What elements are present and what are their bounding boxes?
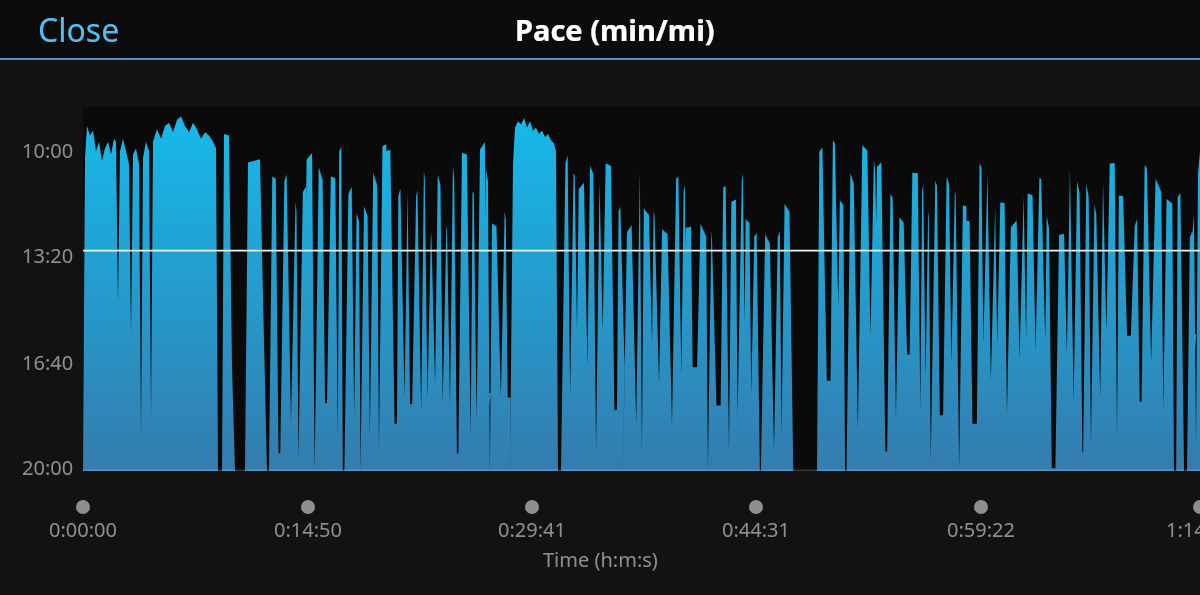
staticText: 10:00 — [22, 137, 74, 164]
staticText: 16:40 — [22, 349, 74, 376]
staticText: 20:00 — [22, 454, 74, 481]
staticText: 0:44:31 — [696, 516, 816, 543]
staticText: 0:29:41 — [472, 516, 592, 543]
staticText: Close — [38, 8, 120, 52]
staticText: 13:20 — [22, 242, 74, 269]
staticText: 0:00:00 — [23, 516, 143, 543]
staticText: 0:59:22 — [921, 516, 1041, 543]
staticText: Time (h:m:s) — [543, 546, 658, 573]
button[interactable]: Close — [0, 0, 158, 60]
staticText: Pace (min/mi) — [515, 10, 715, 49]
staticText: 1:14:12 — [1140, 516, 1200, 543]
staticText: 0:14:50 — [248, 516, 368, 543]
